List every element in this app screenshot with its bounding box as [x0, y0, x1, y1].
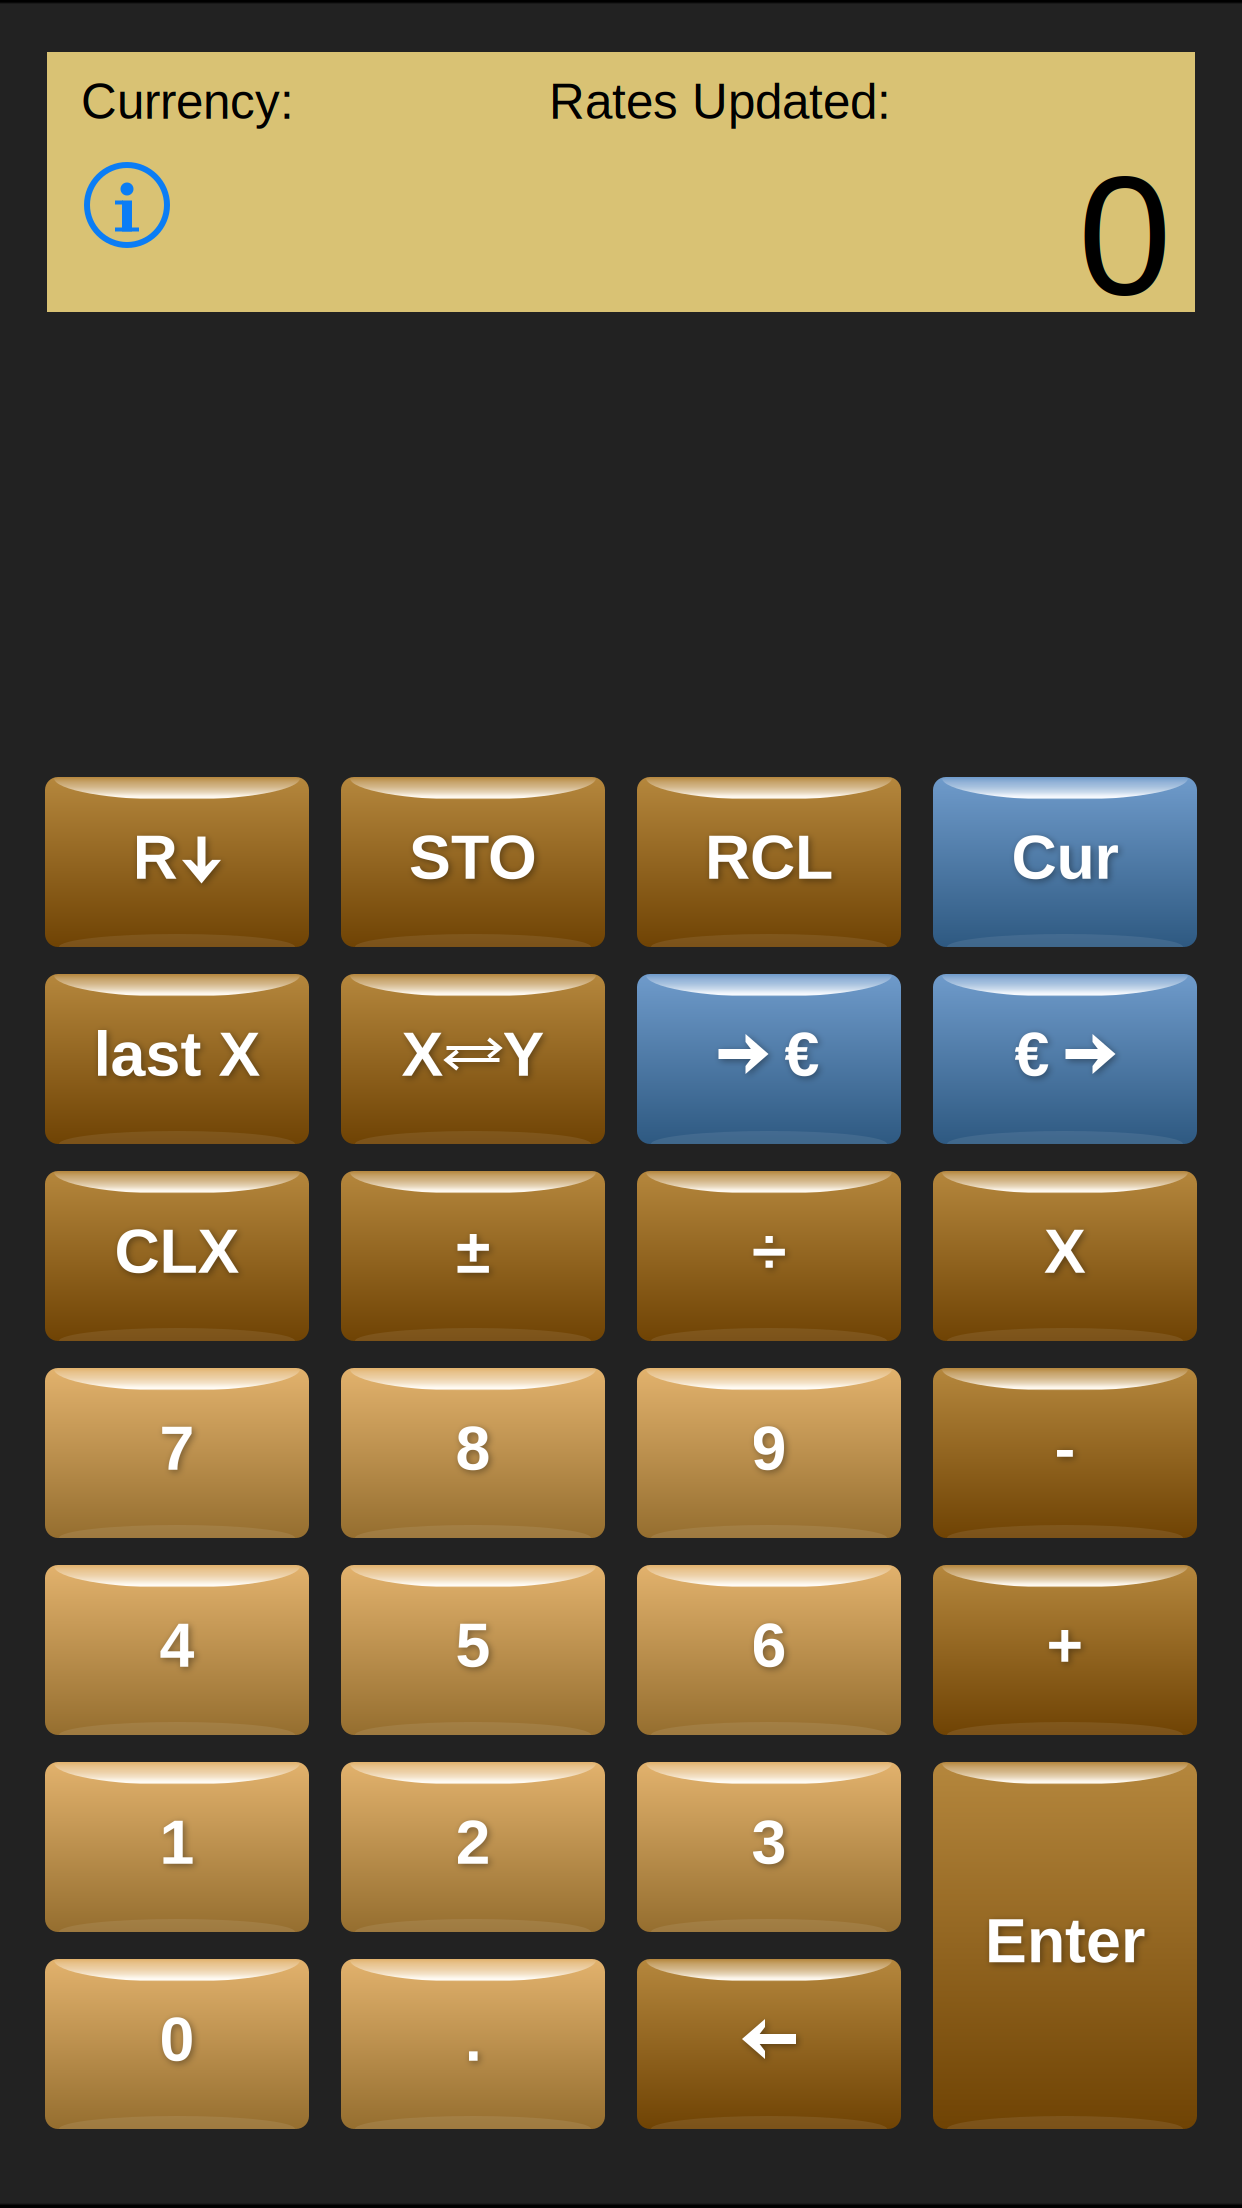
staticText: 9	[751, 1413, 786, 1483]
staticText: +	[1046, 1610, 1083, 1680]
button[interactable]: €	[933, 974, 1197, 1144]
button[interactable]: 8	[341, 1368, 605, 1538]
button[interactable]: 4	[45, 1565, 309, 1735]
staticText: -	[1054, 1413, 1075, 1483]
button[interactable]: +	[933, 1565, 1197, 1735]
staticText: Currency:	[81, 74, 294, 129]
staticText: ±	[456, 1216, 490, 1286]
staticText: 3	[751, 1807, 786, 1877]
staticText: Enter	[985, 1905, 1145, 1975]
staticText: 1	[159, 1807, 194, 1877]
staticText: Rates Updated:	[549, 74, 891, 129]
staticText: CLX	[114, 1216, 239, 1286]
button[interactable]: 2	[341, 1762, 605, 1932]
button[interactable]: 1	[45, 1762, 309, 1932]
staticText: Y	[502, 1019, 544, 1089]
staticText: 6	[751, 1610, 786, 1680]
staticText: €	[1014, 1019, 1049, 1089]
staticText: RCL	[705, 822, 833, 892]
button[interactable]: .	[341, 1959, 605, 2129]
button[interactable]: 6	[637, 1565, 901, 1735]
button[interactable]: ±	[341, 1171, 605, 1341]
button[interactable]: R	[45, 777, 309, 947]
button[interactable]: X	[933, 1171, 1197, 1341]
button[interactable]: 0	[45, 1959, 309, 2129]
staticText: 5	[455, 1610, 490, 1680]
staticText: X	[1044, 1216, 1086, 1286]
staticText: STO	[409, 822, 537, 892]
button[interactable]: 5	[341, 1565, 605, 1735]
button[interactable]: Cur	[933, 777, 1197, 947]
button[interactable]: CLX	[45, 1171, 309, 1341]
button[interactable]: Info	[84, 162, 170, 248]
staticText: Cur	[1011, 822, 1118, 892]
staticText: .	[464, 2004, 481, 2074]
button[interactable]: RCL	[637, 777, 901, 947]
staticText: 0	[159, 2004, 194, 2074]
staticText: 0	[1078, 142, 1171, 330]
button[interactable]: STO	[341, 777, 605, 947]
button[interactable]: 7	[45, 1368, 309, 1538]
button[interactable]: X	[341, 974, 605, 1144]
button[interactable]: Enter	[933, 1762, 1197, 2129]
button[interactable]: €	[637, 974, 901, 1144]
staticText: 2	[455, 1807, 490, 1877]
button[interactable]: 9	[637, 1368, 901, 1538]
staticText: ÷	[752, 1216, 786, 1286]
button[interactable]: last X	[45, 974, 309, 1144]
button[interactable]: -	[933, 1368, 1197, 1538]
staticText: R	[132, 822, 177, 892]
button[interactable]	[637, 1959, 901, 2129]
staticText: last X	[93, 1019, 260, 1089]
staticText: 8	[455, 1413, 490, 1483]
button[interactable]: 3	[637, 1762, 901, 1932]
staticText: 4	[159, 1610, 194, 1680]
staticText: X	[401, 1019, 443, 1089]
button[interactable]: ÷	[637, 1171, 901, 1341]
staticText: 7	[159, 1413, 194, 1483]
staticText: €	[784, 1019, 819, 1089]
